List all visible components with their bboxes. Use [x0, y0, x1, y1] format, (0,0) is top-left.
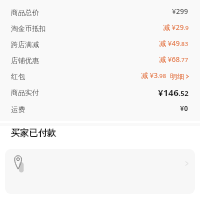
staticText: 商品总价: [11, 8, 39, 17]
button[interactable]: Location: [5, 149, 195, 194]
staticText: 买家已付款: [11, 127, 56, 138]
staticText: 运费: [11, 105, 25, 114]
staticText: 减 ¥49.83: [159, 39, 189, 49]
other: Location: [12, 153, 28, 175]
staticText: ¥146.52: [158, 86, 189, 98]
staticText: 减 ¥68.77: [159, 55, 189, 65]
staticText: 商品实付: [11, 88, 39, 97]
staticText: 店铺优惠: [11, 56, 39, 65]
staticText: 跨店满减: [11, 40, 39, 49]
staticText: 减 ¥29.9: [163, 23, 189, 33]
staticText: 减 ¥3.98: [141, 71, 167, 81]
staticText: ¥299: [172, 7, 189, 17]
staticText: 淘金币抵扣: [11, 24, 46, 33]
staticText: 明细: [170, 72, 184, 81]
staticText: 红包: [11, 72, 25, 81]
button[interactable]: 明细: [170, 72, 189, 81]
staticText: ¥0: [180, 104, 189, 114]
